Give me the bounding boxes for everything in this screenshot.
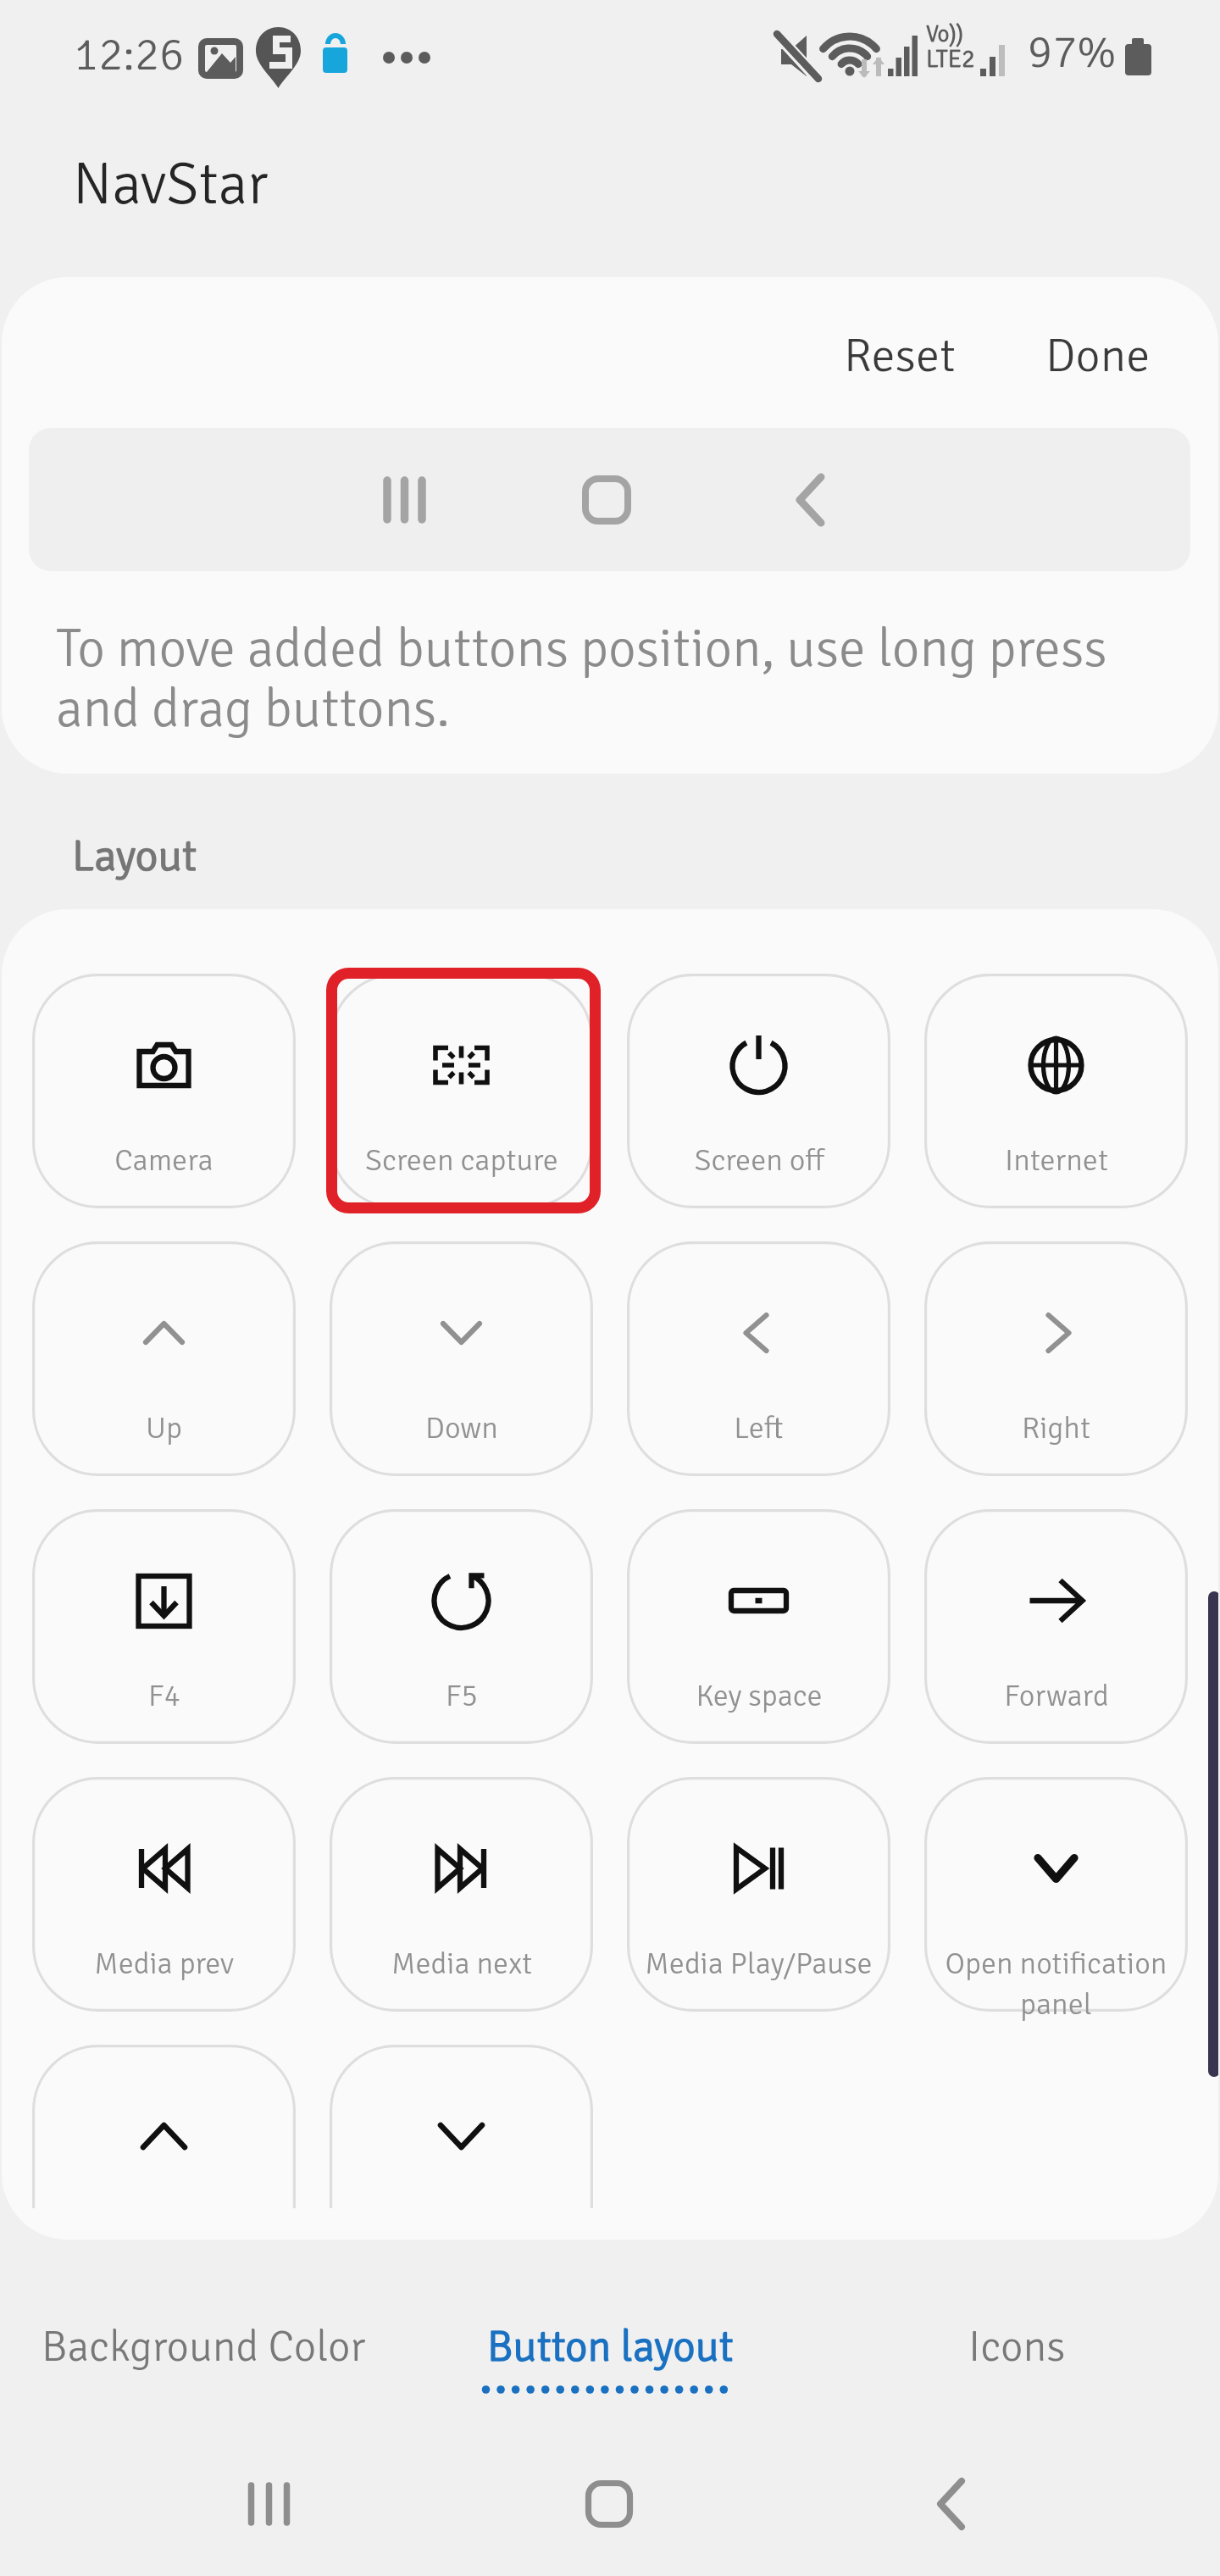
staticText: F4 bbox=[148, 1677, 180, 1714]
button[interactable]: Right bbox=[924, 1241, 1188, 1476]
staticText: Up bbox=[146, 1409, 182, 1446]
button[interactable]: Screen capture bbox=[330, 974, 593, 1208]
staticText: NavStar bbox=[73, 148, 269, 220]
staticText: Right bbox=[1022, 1409, 1090, 1446]
button[interactable]: Done bbox=[1030, 314, 1166, 397]
staticText: Vo)) bbox=[926, 20, 963, 48]
staticText: Background Color bbox=[42, 2320, 366, 2373]
staticText: 97% bbox=[1028, 24, 1117, 80]
button[interactable]: Camera bbox=[32, 974, 296, 1208]
staticText: Button layout bbox=[487, 2320, 734, 2373]
staticText: Screen capture bbox=[365, 1141, 558, 1179]
button[interactable]: Internet bbox=[924, 974, 1188, 1208]
button[interactable]: Reset bbox=[829, 314, 971, 397]
button[interactable]: Background Color bbox=[0, 2279, 407, 2415]
staticText: Media Play/Pause bbox=[645, 1945, 873, 1982]
staticText: Left bbox=[734, 1409, 784, 1446]
button[interactable]: Forward bbox=[924, 1509, 1188, 1744]
button[interactable]: Media next bbox=[330, 1777, 593, 2012]
button[interactable]: Screen off bbox=[627, 974, 890, 1208]
button[interactable]: Media Play/Pause bbox=[627, 1777, 890, 2012]
staticText: Open notification panel bbox=[924, 1945, 1188, 2023]
button[interactable]: Icons bbox=[813, 2279, 1220, 2415]
staticText: Reset bbox=[844, 326, 956, 385]
staticText: F5 bbox=[446, 1677, 478, 1714]
staticText: Down bbox=[425, 1409, 498, 1446]
button[interactable]: Key space bbox=[627, 1509, 890, 1744]
staticText: Camera bbox=[114, 1141, 213, 1179]
staticText: LTE2 bbox=[926, 44, 975, 75]
button[interactable]: Button bbox=[32, 2045, 296, 2208]
staticText: Done bbox=[1045, 326, 1151, 385]
staticText: Internet bbox=[1005, 1141, 1108, 1179]
button[interactable]: Home bbox=[407, 2415, 813, 2576]
staticText: Media next bbox=[391, 1945, 532, 1982]
staticText: To move added buttons position, use long… bbox=[56, 616, 1149, 742]
button[interactable]: Left bbox=[627, 1241, 890, 1476]
button[interactable]: F4 bbox=[32, 1509, 296, 1744]
button[interactable]: Media prev bbox=[32, 1777, 296, 2012]
button[interactable]: F5 bbox=[330, 1509, 593, 1744]
staticText: 12:26 bbox=[74, 26, 185, 83]
staticText: Layout bbox=[72, 829, 197, 883]
button[interactable]: Open notification panel bbox=[924, 1777, 1188, 2012]
button[interactable]: Back bbox=[813, 2415, 1220, 2576]
staticText: Screen off bbox=[694, 1141, 824, 1179]
staticText: Media prev bbox=[94, 1945, 234, 1982]
staticText: Key space bbox=[696, 1677, 823, 1714]
staticText: Forward bbox=[1004, 1677, 1109, 1714]
button[interactable]: Down bbox=[330, 1241, 593, 1476]
button[interactable]: Up bbox=[32, 1241, 296, 1476]
button[interactable]: Recents bbox=[0, 2415, 407, 2576]
button[interactable]: Button bbox=[330, 2045, 593, 2208]
staticText: Icons bbox=[968, 2320, 1066, 2373]
button[interactable]: Button layout bbox=[407, 2279, 813, 2415]
